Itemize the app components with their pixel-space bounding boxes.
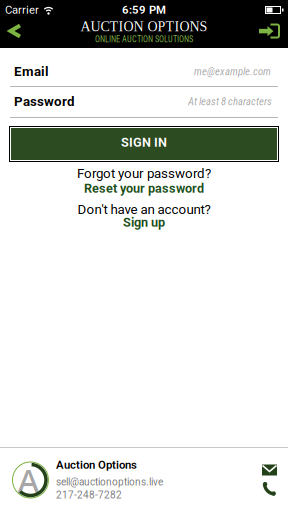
staticText: sell@auctionoptions.live [56, 476, 163, 488]
button[interactable]: Reset your password [84, 182, 204, 195]
staticText: Password [14, 94, 75, 109]
button[interactable]: Back [0, 23, 22, 38]
staticText: Sign up [123, 215, 165, 230]
staticText: Auction Options [56, 458, 137, 472]
staticText: A [17, 458, 39, 502]
button[interactable]: SIGN IN [0, 126, 288, 162]
staticText: Don't have an account? [77, 202, 210, 217]
staticText: 217-248-7282 [56, 489, 122, 501]
staticText: Reset your password [84, 181, 204, 196]
staticText: ONLINE AUCTION SOLUTIONS [95, 35, 193, 44]
staticText: Forgot your password? [77, 166, 211, 181]
staticText: AUCTION OPTIONS [80, 19, 207, 34]
staticText: Email [14, 64, 49, 79]
button[interactable]: Call [262, 481, 276, 495]
staticText: SIGN IN [121, 135, 167, 150]
staticText: me@example.com [194, 65, 271, 78]
button[interactable]: Sign In [258, 23, 288, 38]
staticText: 6:59 PM [122, 3, 166, 17]
button[interactable]: Email [262, 464, 277, 475]
button[interactable]: Sign up [123, 216, 165, 229]
staticText: Carrier [5, 3, 39, 17]
staticText: At least 8 characters [188, 95, 272, 108]
